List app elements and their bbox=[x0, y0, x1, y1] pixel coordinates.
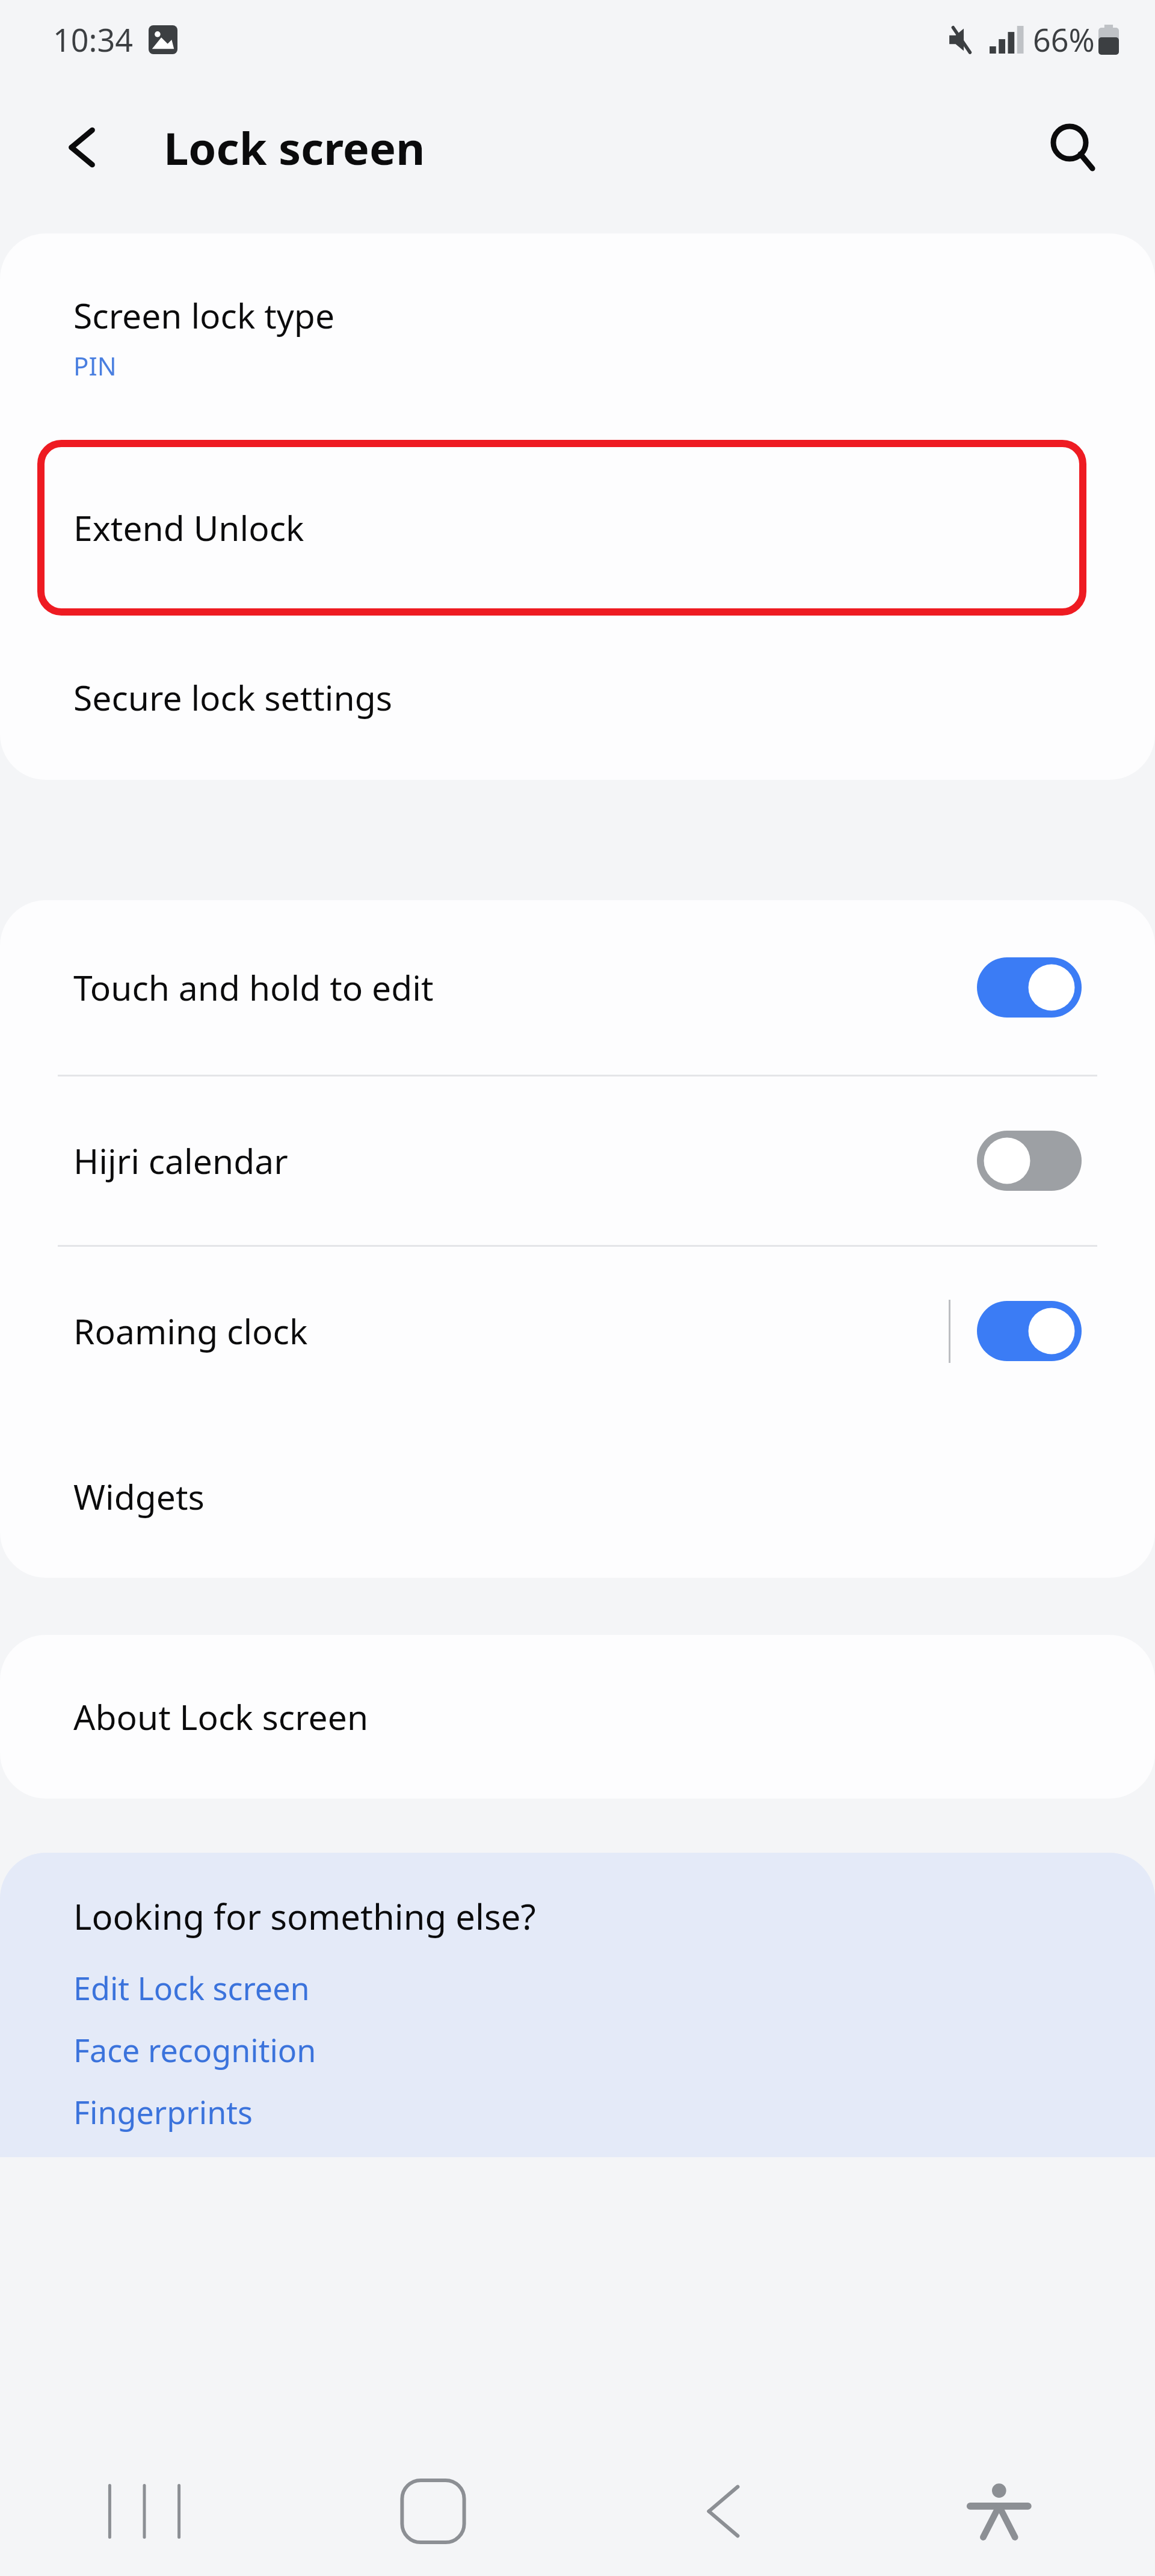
staticText: Widgets bbox=[73, 1473, 205, 1520]
staticText: About Lock screen bbox=[73, 1693, 369, 1740]
button[interactable]: On bbox=[977, 1301, 1082, 1361]
staticText: Face recognition bbox=[73, 2028, 316, 2071]
staticText: Looking for something else? bbox=[73, 1892, 536, 1940]
staticText: Lock screen bbox=[164, 117, 425, 178]
button[interactable]: Back bbox=[54, 119, 112, 176]
staticText: Edit Lock screen bbox=[73, 1966, 310, 2009]
button[interactable]: Extend Unlock bbox=[0, 441, 1155, 614]
staticText: Fingerprints bbox=[73, 2090, 253, 2133]
button[interactable]: Edit Lock screen bbox=[73, 1966, 310, 2009]
staticText: Extend Unlock bbox=[73, 504, 304, 551]
staticText: 66% bbox=[1033, 18, 1095, 61]
button[interactable]: Off bbox=[977, 1131, 1082, 1191]
button[interactable]: Screen lock type bbox=[0, 233, 1155, 441]
button[interactable]: Search bbox=[1043, 117, 1103, 178]
button[interactable]: Touch and hold to edit bbox=[0, 900, 1155, 1075]
staticText: 10:34 bbox=[53, 18, 133, 61]
staticText: Roaming clock bbox=[73, 1308, 949, 1354]
button[interactable]: Home bbox=[289, 2447, 577, 2576]
button[interactable]: Roaming clock bbox=[0, 1247, 1155, 1415]
staticText: Screen lock type bbox=[73, 292, 335, 339]
staticText: Touch and hold to edit bbox=[73, 964, 977, 1011]
button[interactable]: Face recognition bbox=[73, 2028, 316, 2071]
button[interactable]: Back bbox=[577, 2447, 866, 2576]
staticText: Secure lock settings bbox=[73, 674, 393, 721]
button[interactable]: Hijri calendar bbox=[0, 1076, 1155, 1245]
button[interactable]: Accessibility bbox=[866, 2447, 1155, 2576]
button[interactable]: Widgets bbox=[0, 1415, 1155, 1578]
button[interactable]: On bbox=[977, 957, 1082, 1018]
button[interactable]: Fingerprints bbox=[73, 2090, 253, 2133]
staticText: PIN bbox=[73, 348, 117, 383]
button[interactable]: About Lock screen bbox=[0, 1635, 1155, 1799]
button[interactable]: Secure lock settings bbox=[0, 614, 1155, 780]
staticText: Hijri calendar bbox=[73, 1137, 977, 1184]
button[interactable]: Recent apps bbox=[0, 2447, 289, 2576]
